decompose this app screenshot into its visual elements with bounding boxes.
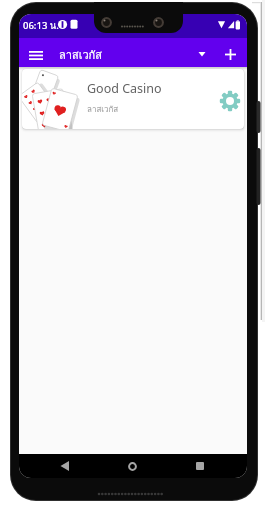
staticText: 06:13 น. bbox=[23, 18, 59, 33]
staticText: ลาสเวกัส bbox=[59, 46, 102, 63]
button[interactable]: Good Casino bbox=[22, 69, 244, 129]
button[interactable] bbox=[55, 457, 73, 475]
staticText: ลาสเวกัส bbox=[87, 103, 119, 116]
button[interactable] bbox=[221, 47, 239, 62]
staticText: Good Casino bbox=[87, 80, 162, 97]
button[interactable] bbox=[191, 457, 209, 475]
button[interactable] bbox=[218, 89, 242, 113]
button[interactable] bbox=[193, 47, 211, 62]
button[interactable] bbox=[27, 46, 45, 64]
button[interactable] bbox=[123, 457, 141, 475]
